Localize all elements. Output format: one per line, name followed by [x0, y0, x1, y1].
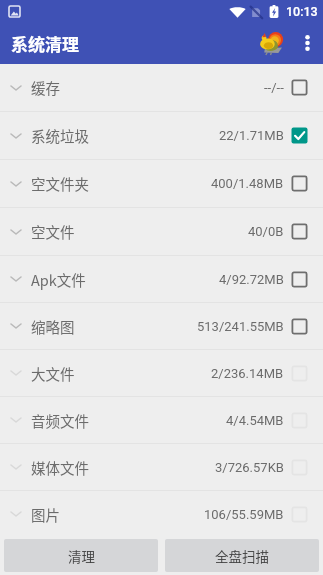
button[interactable]: 空文件 — [0, 208, 323, 255]
staticText: 缓存 — [31, 77, 60, 98]
staticText: 4/92.72MB — [219, 272, 284, 287]
staticText: 4/4.54MB — [226, 413, 284, 428]
staticText: 106/55.59MB — [204, 507, 284, 522]
staticText: 系统垃圾 — [31, 125, 89, 146]
button[interactable]: 清理 — [4, 539, 158, 572]
button[interactable]: 大文件 — [0, 350, 323, 396]
staticText: 媒体文件 — [31, 457, 89, 478]
staticText: 513/241.55MB — [197, 319, 284, 334]
button[interactable]: 系统垃圾 — [0, 112, 323, 159]
button[interactable]: 媒体文件 — [0, 444, 323, 490]
staticText: 大文件 — [31, 363, 75, 384]
staticText: 缩略图 — [31, 316, 75, 337]
staticText: 22/1.71MB — [219, 128, 284, 143]
staticText: 空文件 — [31, 221, 75, 242]
staticText: 音频文件 — [31, 410, 89, 431]
button[interactable]: 图片 — [0, 491, 323, 537]
button[interactable]: 音频文件 — [0, 397, 323, 443]
button[interactable]: More options — [289, 22, 323, 64]
staticText: 400/1.48MB — [211, 176, 284, 191]
button[interactable]: Turkey — [251, 22, 289, 64]
staticText: Apk文件 — [31, 269, 86, 290]
staticText: 10:13 — [286, 4, 318, 19]
staticText: 图片 — [31, 504, 60, 525]
staticText: 40/0B — [248, 224, 284, 239]
staticText: 系统清理 — [11, 31, 79, 56]
staticText: 2/236.14MB — [211, 366, 284, 381]
button[interactable]: 缩略图 — [0, 303, 323, 349]
button[interactable]: 空文件夹 — [0, 160, 323, 207]
staticText: 清理 — [68, 546, 95, 566]
staticText: 全盘扫描 — [215, 546, 269, 566]
button[interactable]: 缓存 — [0, 64, 323, 111]
staticText: --/-- — [264, 80, 284, 95]
staticText: 3/726.57KB — [215, 460, 284, 475]
staticText: 空文件夹 — [31, 173, 89, 194]
button[interactable]: 全盘扫描 — [165, 539, 319, 572]
button[interactable]: Apk文件 — [0, 256, 323, 302]
